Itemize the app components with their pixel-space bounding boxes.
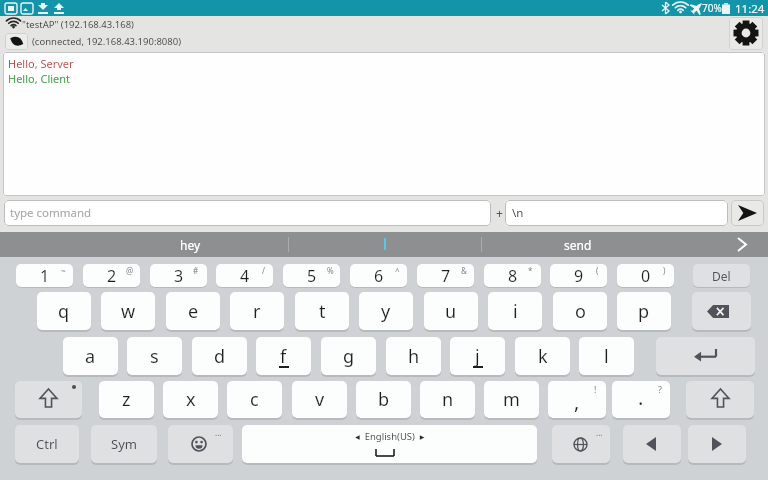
button[interactable] [386,337,441,375]
staticText: ^ [395,265,400,275]
staticText: q [58,299,70,324]
button[interactable] [693,264,750,287]
button[interactable] [515,337,570,375]
button[interactable] [350,264,407,287]
button[interactable] [505,200,728,226]
button[interactable] [227,381,282,418]
staticText: "testAP" (192.168.43.168) [22,18,134,31]
staticText: send [564,237,592,253]
button[interactable] [623,425,681,463]
button[interactable] [99,381,154,418]
button[interactable] [166,292,220,330]
staticText: & [461,265,467,275]
button[interactable] [192,337,247,375]
button[interactable] [242,425,537,463]
staticText: 5 [307,265,317,287]
button[interactable] [150,264,207,287]
staticText: \n [512,205,524,221]
button[interactable] [216,264,273,287]
staticText: z [122,387,131,412]
button[interactable] [484,381,539,418]
button[interactable] [16,264,73,287]
button[interactable] [424,292,478,330]
staticText: f [280,344,287,369]
button[interactable] [731,200,764,226]
button[interactable] [292,381,347,418]
button[interactable] [127,337,182,375]
staticText: d [214,344,226,369]
staticText: s [150,344,159,369]
staticText: a [85,344,96,369]
button[interactable] [450,337,505,375]
button[interactable] [553,292,607,330]
button[interactable] [656,337,755,375]
staticText: v [315,387,325,412]
staticText: e [188,299,199,324]
button[interactable] [321,337,376,375]
button[interactable] [617,264,674,287]
staticText: % [327,265,334,275]
button[interactable] [91,425,157,463]
staticText: 7 [441,265,451,287]
button[interactable] [417,264,474,287]
staticText: k [538,344,548,369]
button[interactable] [420,381,475,418]
staticText: (connected, 192.168.43.190:8080) [32,35,182,48]
staticText: g [343,344,355,369]
button[interactable] [729,17,763,50]
staticText: 0 [641,265,651,287]
button[interactable] [163,381,218,418]
button[interactable] [548,381,606,418]
button[interactable] [37,292,91,330]
button[interactable] [686,381,754,418]
button[interactable] [101,292,155,330]
button[interactable] [295,292,349,330]
staticText: 9 [574,265,584,287]
button[interactable] [688,425,746,463]
button[interactable] [63,337,118,375]
button[interactable] [550,264,607,287]
button[interactable] [15,381,82,418]
staticText: Sym [111,435,137,453]
button[interactable] [168,425,233,463]
staticText: o [575,299,586,324]
staticText: 4 [240,265,250,287]
button[interactable] [552,425,610,463]
button[interactable] [692,292,751,330]
button[interactable] [488,292,542,330]
staticText: 3 [174,265,184,287]
staticText: t [319,299,326,324]
staticText: + [496,205,503,221]
staticText: type command [10,205,92,221]
staticText: * [528,265,533,275]
staticText: 8 [508,265,518,287]
staticText: n [442,387,454,412]
staticText: 11:24 [735,1,765,15]
button[interactable] [4,200,491,226]
button[interactable] [256,337,311,375]
button[interactable] [617,292,671,330]
staticText: ( [596,265,599,275]
button[interactable] [484,264,541,287]
staticText: p [638,299,650,324]
staticText: ! [594,383,597,395]
button[interactable] [359,292,413,330]
button[interactable] [83,264,140,287]
staticText: Hello, Client [8,71,71,86]
staticText: 1 [40,265,50,287]
staticText: , [574,388,580,415]
button[interactable] [283,264,340,287]
button[interactable] [612,381,670,418]
staticText: Ctrl [36,435,58,453]
staticText: ? [658,383,662,395]
button[interactable] [579,337,634,375]
button[interactable] [356,381,411,418]
staticText: ) [663,265,666,275]
button[interactable] [230,292,284,330]
staticText: ... [215,427,222,437]
staticText: y [381,299,391,324]
staticText: w [121,299,136,324]
staticText: r [253,299,261,324]
button[interactable] [15,425,79,463]
button[interactable] [5,33,28,50]
